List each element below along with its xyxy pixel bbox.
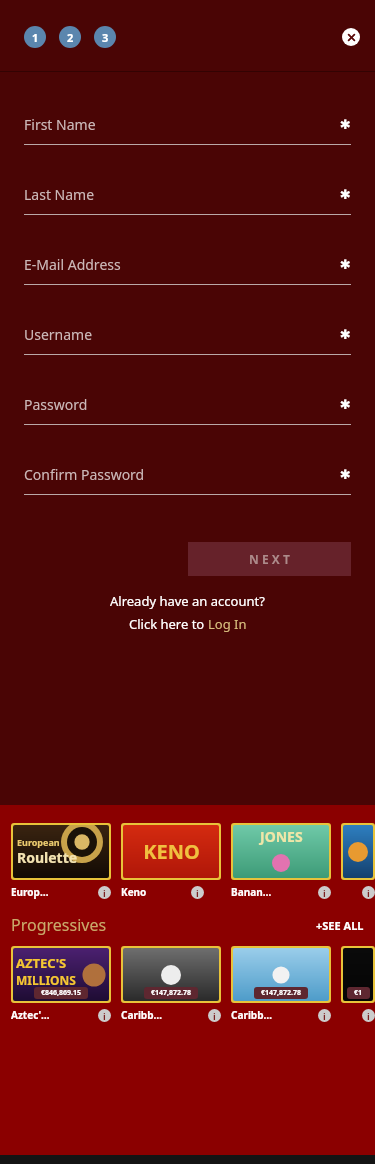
staticText: Banana Jones [231, 885, 274, 899]
staticText: N E X T [249, 551, 290, 567]
staticText: 1 [32, 30, 39, 45]
staticText: ✱ [340, 117, 351, 132]
staticText: 2 [67, 30, 74, 45]
staticText: Already have an account? [110, 592, 265, 610]
staticText: i [196, 887, 199, 899]
staticText: i [213, 1010, 216, 1022]
button[interactable] [343, 825, 373, 878]
staticText: i [367, 887, 370, 899]
staticText: i [323, 1010, 326, 1022]
staticText: Aztec's Milli... [11, 1008, 54, 1022]
button[interactable]: €147,872.78 [123, 948, 219, 1001]
button[interactable]: Last Name [0, 170, 375, 240]
staticText: ✱ [340, 187, 351, 202]
staticText: Progressives [11, 914, 107, 936]
staticText: MILLIONS [16, 972, 76, 988]
button[interactable]: Game info [318, 886, 331, 899]
button[interactable]: N E X T [188, 542, 351, 576]
staticText: ✱ [340, 397, 351, 412]
staticText: Username [24, 325, 93, 344]
staticText: Password [24, 395, 88, 414]
button[interactable]: Game info [318, 1009, 331, 1022]
staticText: Keno [121, 885, 147, 899]
staticText: Caribbean D... [121, 1008, 164, 1022]
button[interactable]: 3 [94, 26, 116, 48]
staticText: +SEE ALL [316, 918, 364, 933]
button[interactable]: 2 [59, 26, 81, 48]
staticText: Last Name [24, 185, 95, 204]
staticText: Roulette [17, 848, 78, 867]
button[interactable]: Username [0, 310, 375, 380]
button[interactable]: European [13, 825, 109, 878]
button[interactable]: €1 [343, 948, 373, 1001]
button[interactable]: JONES [233, 825, 329, 878]
staticText: European [17, 836, 60, 848]
staticText: i [367, 1010, 370, 1022]
button[interactable]: Close [342, 28, 360, 46]
button[interactable]: Password [0, 380, 375, 450]
button[interactable]: 1 [24, 26, 46, 48]
button[interactable]: Game info [191, 886, 204, 899]
button[interactable]: KENO [123, 825, 219, 878]
button[interactable]: Game info [98, 1009, 111, 1022]
staticText: First Name [24, 115, 96, 134]
staticText: JONES [260, 827, 303, 846]
staticText: i [103, 1010, 106, 1022]
staticText: Caribbean H... [231, 1008, 274, 1022]
staticText: ✱ [340, 467, 351, 482]
staticText: E-Mail Address [24, 255, 121, 274]
staticText: European R... [11, 885, 54, 899]
button[interactable]: Click here to [129, 615, 247, 633]
button[interactable]: Game info [208, 1009, 221, 1022]
button[interactable]: +SEE ALL [316, 918, 364, 933]
staticText: AZTEC'S [16, 954, 67, 972]
button[interactable]: E-Mail Address [0, 240, 375, 310]
button[interactable]: Game info [362, 1009, 375, 1022]
button[interactable]: AZTEC'S [13, 948, 109, 1001]
staticText: 3 [102, 30, 109, 45]
button[interactable]: €147,872.78 [233, 948, 329, 1001]
button[interactable]: Game info [362, 886, 375, 899]
staticText: Log In [208, 615, 247, 633]
staticText: Click here to [129, 615, 208, 633]
staticText: ✱ [340, 257, 351, 272]
staticText: Confirm Password [24, 465, 145, 484]
button[interactable]: First Name [0, 100, 375, 170]
button[interactable]: Game info [98, 886, 111, 899]
staticText: €846,869.15 [41, 988, 81, 998]
staticText: €147,872.78 [261, 988, 301, 998]
staticText: €147,872.78 [151, 988, 191, 998]
staticText: i [323, 887, 326, 899]
button[interactable]: Confirm Password [0, 450, 375, 520]
staticText: i [103, 887, 106, 899]
staticText: ✱ [340, 327, 351, 342]
staticText: €1 [354, 988, 363, 998]
staticText: KENO [143, 838, 200, 865]
